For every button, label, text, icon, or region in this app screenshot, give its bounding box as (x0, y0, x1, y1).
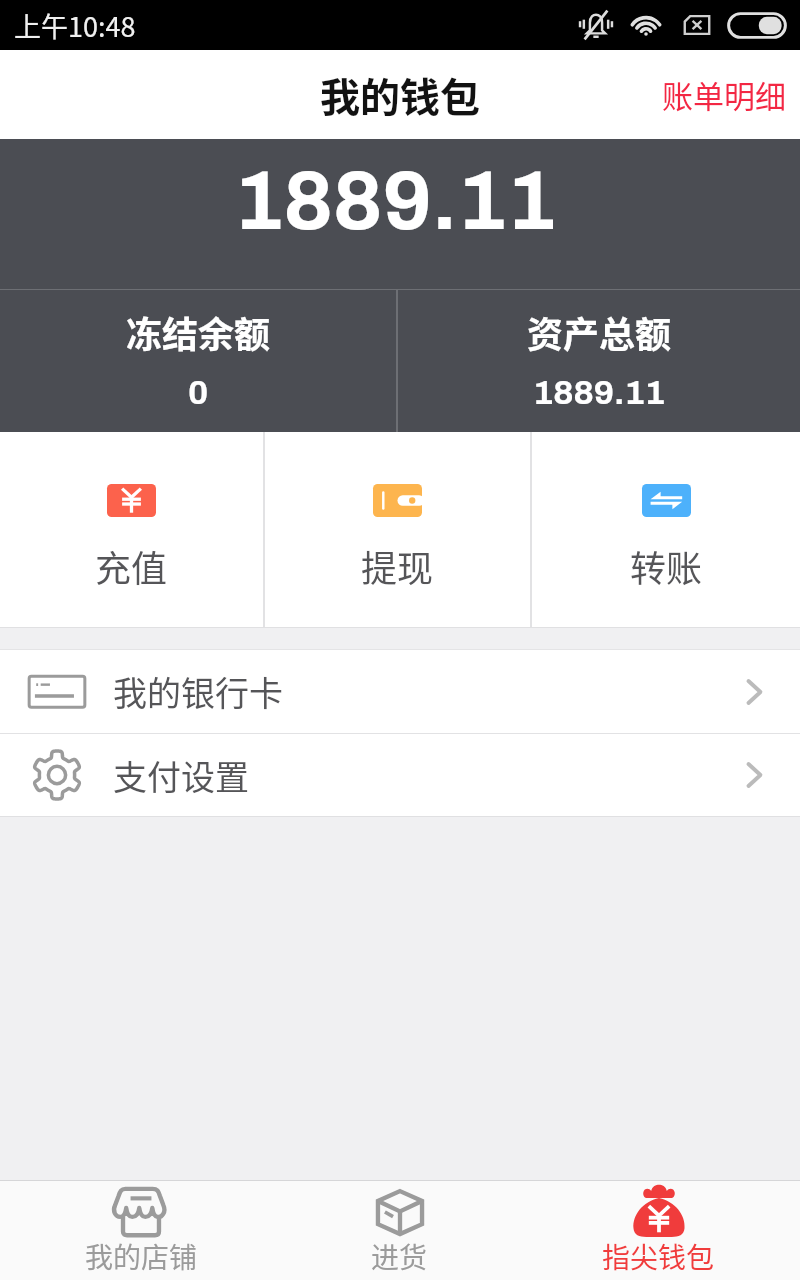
staticText: 进货 (371, 1236, 428, 1277)
button[interactable]: 账单明细 (648, 50, 800, 139)
button[interactable]: 指尖钱包 (529, 1181, 788, 1280)
staticText: 提现 (361, 540, 434, 592)
staticText: 账单明细 (662, 72, 786, 117)
staticText: 支付设置 (113, 751, 249, 800)
staticText: 1889.11 (234, 156, 557, 246)
button[interactable]: 支付设置 (0, 734, 800, 816)
staticText: 转账 (630, 540, 703, 592)
button[interactable]: 提现 (265, 432, 530, 627)
button[interactable]: 我的店铺 (12, 1181, 270, 1280)
staticText: 1889.11 (533, 374, 665, 411)
button[interactable]: 转账 (532, 432, 800, 627)
staticText: 充值 (95, 540, 168, 592)
button[interactable]: 资产总额 (398, 290, 800, 432)
staticText: 指尖钱包 (602, 1236, 715, 1277)
button[interactable]: 我的银行卡 (0, 650, 800, 733)
staticText: 我的钱包 (320, 66, 480, 124)
staticText: 资产总额 (527, 306, 672, 358)
button[interactable]: 充值 (0, 432, 263, 627)
button[interactable]: 进货 (270, 1181, 529, 1280)
staticText: 上午10:48 (14, 6, 136, 45)
button[interactable]: 冻结余额 (0, 290, 396, 432)
staticText: 0 (188, 374, 209, 411)
staticText: 我的银行卡 (113, 667, 283, 716)
staticText: 我的店铺 (85, 1236, 198, 1277)
staticText: 冻结余额 (126, 306, 271, 358)
